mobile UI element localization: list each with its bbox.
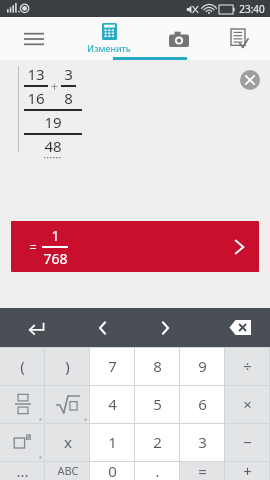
button[interactable]: × [225,385,270,423]
staticText: 0 [108,461,117,480]
staticText: 8 [64,88,73,108]
button[interactable]: ( [0,347,45,385]
staticText: 16 [27,88,45,108]
button[interactable]: 4 [90,385,135,423]
button[interactable]: 5 [135,385,180,423]
button[interactable]: Fraction [0,385,45,423]
button[interactable]: = [180,461,225,480]
button[interactable]: Square [0,423,45,461]
staticText: 19 [44,112,62,132]
staticText: 23:40 [239,2,265,16]
button[interactable]: ÷ [225,347,270,385]
staticText: 5 [153,394,162,414]
staticText: 768 [43,249,68,268]
button[interactable]: 1 [90,423,135,461]
button[interactable]: Enter [0,308,72,347]
button[interactable]: 0 [90,461,135,480]
button[interactable]: = [11,221,259,272]
staticText: 13 [27,64,45,84]
button[interactable]: ABC [45,461,90,480]
staticText: 1 [108,432,117,452]
staticText: 6 [198,394,207,414]
staticText: − [243,432,252,452]
staticText: 3 [64,64,73,84]
staticText: + [51,78,58,94]
staticText: ( [20,356,25,376]
staticText: . [155,461,160,480]
button[interactable]: ) [45,347,90,385]
button[interactable]: − [225,423,270,461]
staticText: ABC [57,463,79,478]
button[interactable]: 6 [180,385,225,423]
button[interactable]: Clear [240,70,260,90]
button[interactable]: + [225,461,270,480]
button[interactable]: Previous [72,308,134,347]
button[interactable]: History [208,17,270,60]
button[interactable]: 7 [90,347,135,385]
staticText: × [243,394,252,414]
staticText: x [64,432,72,452]
button[interactable]: 2 [135,423,180,461]
button[interactable]: 8 [135,347,180,385]
button[interactable]: x [45,423,90,461]
button[interactable]: Изменить [68,17,150,60]
staticText: 2 [153,432,162,452]
button[interactable]: . [135,461,180,480]
button[interactable]: Camera [150,17,208,60]
staticText: 48 [44,136,62,156]
button[interactable]: Square root [45,385,90,423]
staticText: 8 [153,356,162,376]
staticText: Изменить [87,42,131,54]
staticText: ... [16,461,29,480]
staticText: = [29,238,37,256]
button[interactable]: ... [0,461,45,480]
button[interactable]: Backspace [210,308,270,347]
staticText: 7 [108,356,117,376]
staticText: ÷ [243,356,252,376]
staticText: 1 [51,226,60,245]
staticText: = [198,461,207,480]
button[interactable]: 9 [180,347,225,385]
staticText: 3 [198,432,207,452]
button[interactable]: Next [134,308,196,347]
staticText: 9 [198,356,207,376]
button[interactable]: 3 [180,423,225,461]
staticText: + [243,461,252,480]
button[interactable]: Menu [0,17,68,60]
staticText: 4 [108,394,117,414]
staticText: ) [65,356,70,376]
